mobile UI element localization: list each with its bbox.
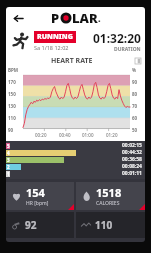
staticText: 110 <box>8 115 16 121</box>
staticText: 01:20 <box>106 132 118 138</box>
staticText: DURATION <box>114 46 141 53</box>
staticText: 90 <box>132 79 138 85</box>
staticText: 00:08:24 <box>122 163 142 170</box>
staticText: 00:40 <box>59 132 71 138</box>
staticText: 130 <box>8 103 16 109</box>
staticText: 170 <box>8 79 16 85</box>
staticText: 80 <box>132 91 138 97</box>
staticText: P <box>51 9 60 27</box>
staticText: 00:36:58 <box>122 156 142 163</box>
staticText: LAR <box>72 9 98 27</box>
button[interactable]: 92 <box>6 212 74 238</box>
staticText: 92 <box>25 218 37 232</box>
button[interactable]: 154 <box>6 182 74 210</box>
button[interactable]: 5 <box>6 142 145 177</box>
button[interactable]: 1518 <box>76 182 145 210</box>
staticText: 4 <box>7 150 10 156</box>
staticText: 1 <box>7 171 10 177</box>
staticText: CALORIES <box>96 200 120 207</box>
staticText: 5 <box>7 143 10 149</box>
staticText: . <box>98 12 101 24</box>
staticText: 70 <box>132 103 138 109</box>
staticText: 01:00 <box>82 132 94 138</box>
button[interactable]: 110 <box>76 212 145 238</box>
staticText: 150 <box>8 91 16 97</box>
staticText: 01:32:20 <box>93 30 141 46</box>
staticText: 00:20 <box>35 132 47 138</box>
staticText: Sa 1/18 12:02 <box>34 44 69 51</box>
staticText: 1518 <box>96 185 122 200</box>
staticText: 00:01:11 <box>122 170 142 177</box>
staticText: 3 <box>7 157 10 163</box>
staticText: 00:02:15 <box>122 142 142 149</box>
staticText: 2 <box>7 164 10 170</box>
staticText: 90 <box>8 127 14 133</box>
staticText: 60 <box>132 115 138 121</box>
staticText: 00:44:32 <box>122 149 142 156</box>
staticText: % <box>132 67 137 73</box>
staticText: 50 <box>132 127 138 133</box>
staticText: 110 <box>95 218 113 232</box>
staticText: BPM <box>8 67 19 73</box>
staticText: RUNNING <box>37 32 73 42</box>
staticText: 154 <box>26 185 45 200</box>
staticText: HR [bpm] <box>26 200 49 207</box>
button[interactable]: HEART RATE <box>6 54 145 141</box>
staticText: HEART RATE <box>51 56 93 66</box>
button[interactable]: RUNNING <box>6 28 145 54</box>
button[interactable]: Back <box>9 9 27 27</box>
